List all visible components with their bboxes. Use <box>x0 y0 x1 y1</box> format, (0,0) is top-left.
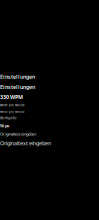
staticText: Worte pro Minute <box>0 103 25 107</box>
staticText: 56 px <box>0 123 9 128</box>
staticText: Einstellungen <box>0 73 35 80</box>
staticText: Originaltext eingeben <box>0 140 51 147</box>
staticText: Schriftgröße <box>0 116 17 120</box>
staticText: Originaltext eingeben <box>0 131 36 137</box>
staticText: Einstellungen <box>0 83 35 90</box>
staticText: Worte pro Minute <box>0 110 25 113</box>
staticText: 330 WPM <box>0 93 23 100</box>
